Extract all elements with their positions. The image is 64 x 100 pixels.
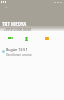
staticText: Bugün 13:51: [6, 47, 28, 52]
staticText: Yanıtlanan arama: [6, 53, 32, 57]
button[interactable]: Video call: [6, 35, 14, 41]
staticText: TRT MEDYA: [2, 21, 27, 27]
button[interactable]: Bugün 13:51: [0, 46, 64, 57]
button[interactable]: Call: [23, 35, 30, 42]
staticText: +90 312 000 00 00: [4, 28, 32, 32]
button[interactable]: Message: [43, 36, 51, 41]
button[interactable]: Back: [4, 5, 9, 10]
